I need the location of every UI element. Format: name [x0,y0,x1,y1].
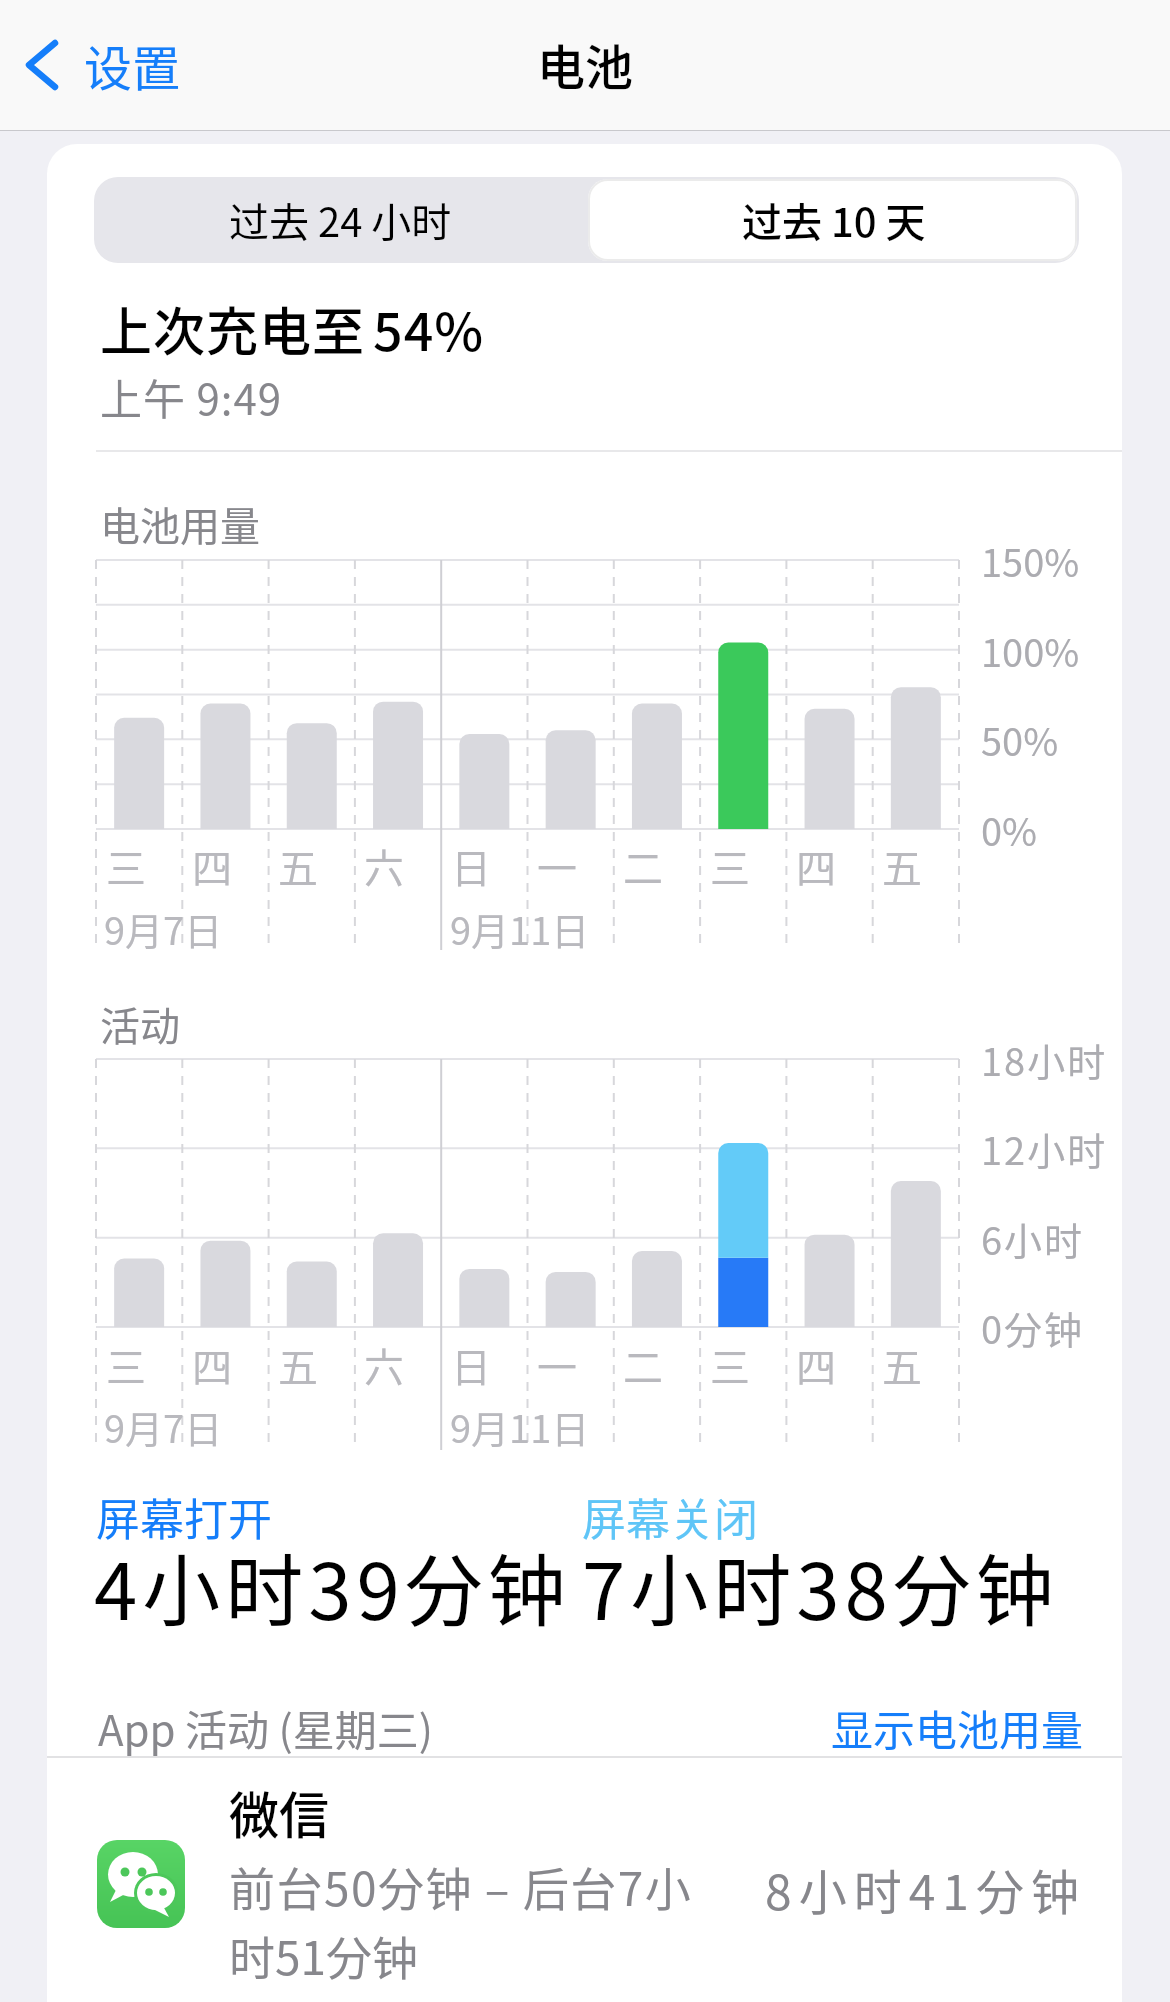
button[interactable] [47,1758,1122,2002]
staticText: 二 [623,1336,663,1394]
staticText: 0分钟 [981,1300,1085,1355]
staticText: 五 [278,1336,318,1394]
staticText: 54% [373,291,485,366]
staticText: 四 [192,1336,232,1394]
staticText: 电池用量 [100,495,260,553]
button[interactable] [10,30,230,102]
staticText: 上次充电至 [100,291,366,366]
staticText: 三 [106,837,146,895]
staticText: 六 [364,837,404,895]
staticText: 一 [537,1336,577,1394]
staticText: 五 [882,1336,922,1394]
staticText: 9月7日 [104,901,223,956]
staticText: 7小时38分钟 [582,1530,1059,1643]
staticText: 12小时 [981,1121,1108,1176]
staticText: 屏幕关闭 [582,1485,758,1549]
staticText: 屏幕打开 [96,1485,272,1549]
button[interactable] [94,177,586,263]
staticText: 三 [106,1336,146,1394]
staticText: 四 [796,1336,836,1394]
staticText: 9月11日 [450,901,590,956]
staticText: 时51分钟 [229,1922,419,1989]
staticText: 微信 [229,1776,329,1848]
staticText: 六 [364,1336,404,1394]
button[interactable]: 显示电池用量 [700,1667,1084,1787]
staticText: 五 [882,837,922,895]
staticText: 活动 [100,995,180,1053]
staticText: 三 [710,837,750,895]
staticText: 9月11日 [450,1399,590,1454]
staticText: 0% [981,802,1038,857]
staticText: 150% [981,533,1080,588]
staticText: 8小时41分钟 [765,1854,1086,1924]
staticText: 6小时 [981,1211,1085,1266]
staticText: 50% [981,712,1059,767]
staticText: 4小时39分钟 [94,1530,571,1643]
staticText: 五 [278,837,318,895]
staticText: 18小时 [981,1032,1108,1087]
staticText: 四 [796,837,836,895]
staticText: 设置 [84,30,181,100]
staticText: App 活动 (星期三) [98,1697,433,1758]
staticText: 一 [537,837,577,895]
staticText: 前台50分钟 – 后台7小 [229,1853,693,1920]
staticText: 上午 9:49 [100,366,283,427]
staticText: 四 [192,837,232,895]
button[interactable] [588,179,1077,261]
staticText: 三 [710,1336,750,1394]
staticText: 二 [623,837,663,895]
staticText: 显示电池用量 [831,1697,1084,1758]
staticText: 日 [451,1336,491,1394]
staticText: 过去 24 小时 [229,191,452,249]
staticText: 9月7日 [104,1399,223,1454]
staticText: 日 [451,837,491,895]
staticText: 100% [981,623,1080,678]
staticText: 过去 10 天 [742,191,926,249]
staticText: 电池 [537,29,634,99]
